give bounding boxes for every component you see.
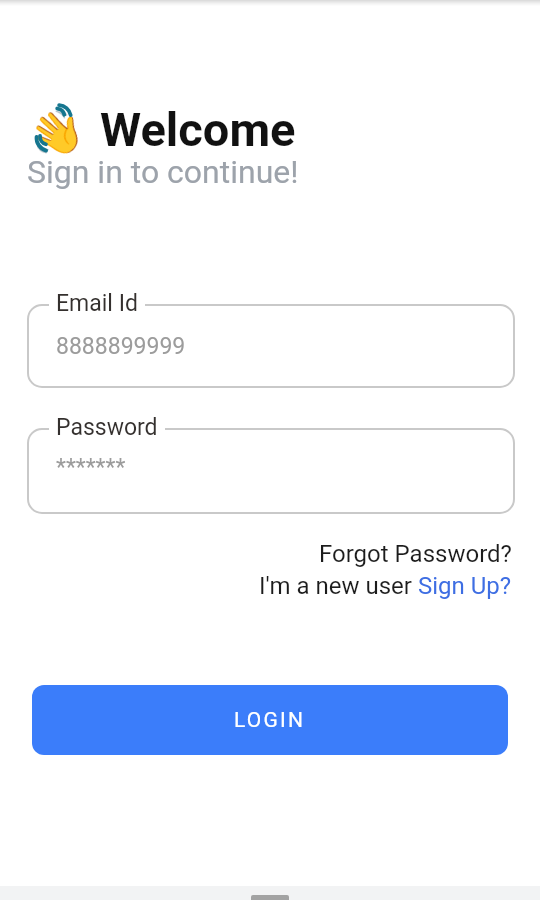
staticText: Password: [56, 414, 158, 441]
staticText: Sign Up?: [418, 572, 512, 600]
button[interactable]: Sign Up?: [418, 572, 512, 600]
staticText: I'm a new user: [259, 572, 418, 600]
staticText: 8888899999: [56, 333, 186, 360]
staticText: Sign in to continue!: [27, 153, 299, 189]
button[interactable]: Password: [27, 428, 515, 514]
button[interactable]: Forgot Password?: [319, 540, 512, 568]
staticText: Welcome: [100, 102, 296, 154]
staticText: *******: [56, 454, 126, 481]
staticText: Forgot Password?: [319, 540, 512, 568]
button[interactable]: LOGIN: [32, 685, 508, 755]
staticText: 👋: [22, 100, 91, 166]
staticText: Email Id: [56, 290, 138, 317]
button[interactable]: Email Id: [27, 304, 515, 388]
staticText: LOGIN: [234, 708, 306, 733]
